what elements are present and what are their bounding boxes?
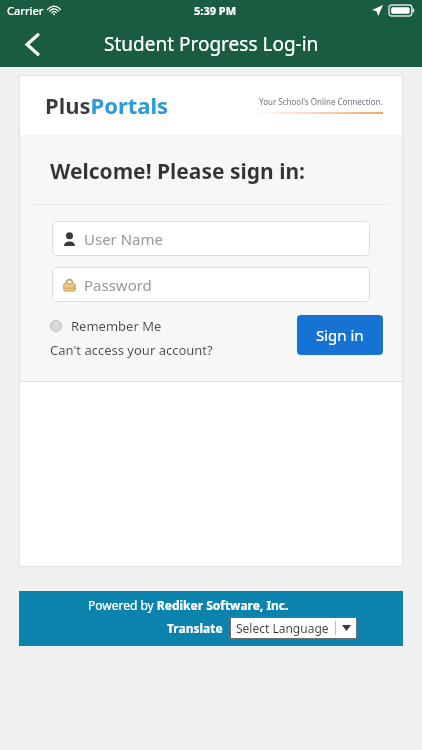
staticText: Welcome! Please sign in: — [50, 157, 306, 186]
staticText: Carrier — [7, 3, 44, 18]
staticText: Password — [84, 275, 152, 295]
staticText: Select Language — [236, 620, 329, 636]
staticText: Remember Me — [71, 317, 162, 335]
staticText: Powered by Rediker Software, Inc. — [88, 597, 289, 613]
button[interactable]: Back — [12, 24, 52, 64]
staticText: Your School's Online Connection. — [259, 96, 383, 107]
staticText: Translate — [167, 620, 223, 636]
staticText: Sign in — [316, 325, 364, 345]
button[interactable]: Remember Me — [50, 317, 162, 335]
button[interactable]: Can't access your account? — [50, 341, 213, 359]
button[interactable]: Select Language — [230, 617, 357, 639]
button[interactable]: User Name — [52, 221, 370, 256]
staticText: 5:39 PM — [194, 3, 237, 18]
button[interactable]: Sign in — [297, 315, 383, 355]
staticText: PlusPortals — [45, 90, 169, 120]
staticText: User Name — [84, 229, 164, 249]
button[interactable]: Password — [52, 267, 370, 302]
staticText: Student Progress Log-in — [104, 31, 319, 57]
